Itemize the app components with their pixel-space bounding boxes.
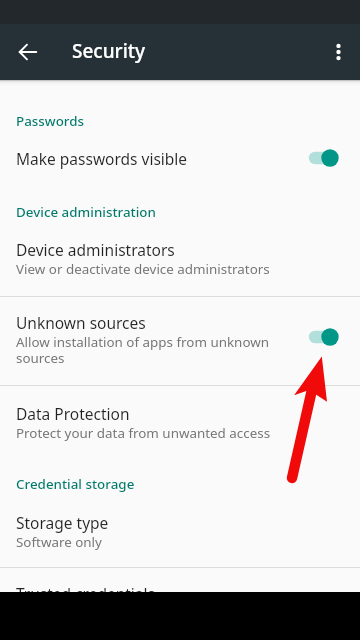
staticText: Credential storage — [16, 475, 135, 493]
staticText: Allow installation of apps from unknown — [16, 333, 270, 351]
button[interactable]: Toggle setting — [308, 146, 344, 170]
button[interactable]: Navigate up — [8, 32, 48, 72]
button[interactable]: Trusted credentials — [0, 583, 360, 622]
staticText: Storage type — [16, 512, 109, 533]
button[interactable]: Storage type — [0, 512, 360, 551]
staticText: Device administrators — [16, 239, 175, 260]
staticText: View or deactivate device administrators — [16, 260, 270, 278]
staticText: Security — [72, 38, 146, 64]
staticText: sources — [16, 349, 65, 367]
staticText: Protect your data from unwanted access — [16, 424, 271, 442]
button[interactable]: Make passwords visible — [0, 146, 360, 170]
staticText: Passwords — [16, 112, 85, 130]
staticText: Unknown sources — [16, 312, 146, 333]
staticText: Make passwords visible — [16, 148, 308, 169]
button[interactable]: Toggle setting — [308, 325, 344, 349]
button[interactable]: More options — [318, 32, 358, 72]
button[interactable]: Device administrators — [0, 239, 360, 278]
staticText: Software only — [16, 533, 102, 551]
staticText: Data Protection — [16, 403, 130, 424]
staticText: Device administration — [16, 203, 156, 221]
button[interactable]: Unknown sources — [0, 312, 360, 369]
staticText: Trusted credentials — [16, 583, 155, 604]
button[interactable]: Data Protection — [0, 403, 360, 442]
